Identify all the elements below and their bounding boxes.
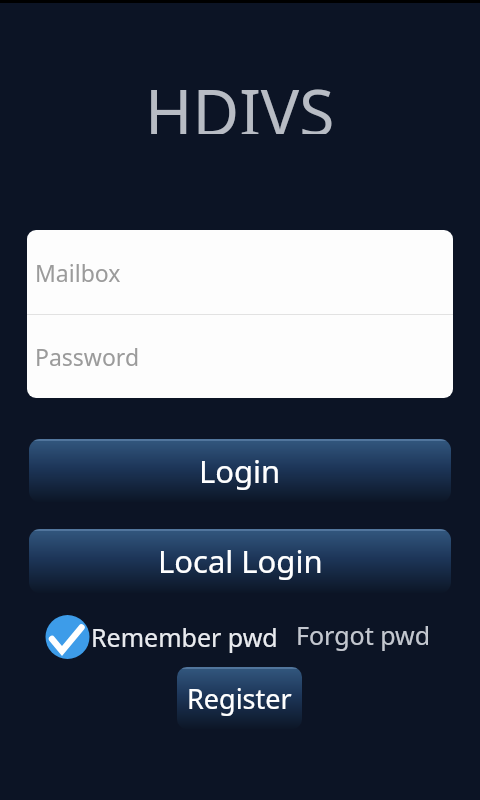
staticText: Forgot pwd [296, 618, 431, 652]
button[interactable]: Password [27, 315, 453, 398]
staticText: HDIVS [145, 68, 335, 134]
button[interactable]: Mailbox [27, 230, 453, 314]
button[interactable]: Register [177, 667, 302, 729]
button[interactable]: Remember pwd [45, 615, 278, 659]
button[interactable]: Local Login [29, 529, 451, 593]
staticText: Login [199, 450, 281, 492]
staticText: Register [187, 680, 292, 717]
staticText: Remember pwd [91, 620, 278, 654]
staticText: Local Login [158, 540, 323, 582]
button[interactable]: Forgot pwd [296, 613, 446, 657]
staticText: Mailbox [35, 257, 121, 288]
staticText: Password [35, 341, 140, 372]
button[interactable]: Login [29, 439, 451, 502]
